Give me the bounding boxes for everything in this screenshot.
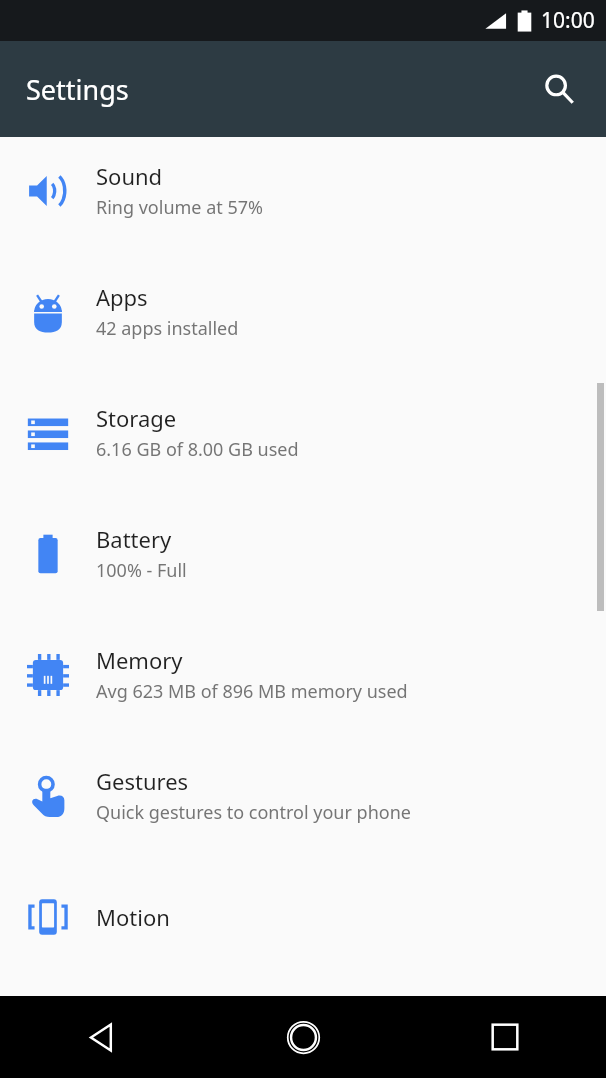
staticText: Motion [96,902,170,932]
staticText: Gestures [96,766,189,796]
staticText: Avg 623 MB of 896 MB memory used [96,679,408,704]
button[interactable]: Back [0,996,202,1078]
button[interactable]: Gestures [0,735,606,856]
staticText: Storage [96,403,177,433]
staticText: Sound [96,161,163,191]
staticText: 42 apps installed [96,316,239,341]
staticText: Apps [96,282,148,312]
staticText: Memory [96,645,183,675]
button[interactable]: Apps [0,251,606,372]
staticText: Battery [96,524,172,554]
staticText: Ring volume at 57% [96,195,264,220]
button[interactable]: Motion [0,856,606,977]
staticText: Settings [26,71,129,108]
button[interactable]: Recent apps [404,996,606,1078]
staticText: 6.16 GB of 8.00 GB used [96,437,299,462]
button[interactable]: Storage [0,372,606,493]
button[interactable]: Search [532,62,586,116]
staticText: Quick gestures to control your phone [96,800,411,825]
button[interactable]: Sound [0,130,606,251]
button[interactable]: Battery [0,493,606,614]
button[interactable]: Memory [0,614,606,735]
staticText: 100% - Full [96,558,187,583]
staticText: 10:00 [541,6,595,35]
button[interactable]: Home [202,996,404,1078]
